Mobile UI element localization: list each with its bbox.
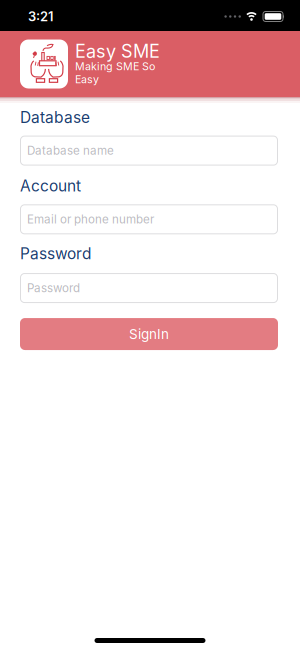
staticText: Making SME So Easy — [75, 60, 155, 86]
button[interactable]: Email or phone number — [20, 204, 278, 234]
staticText: Database name — [27, 144, 114, 158]
staticText: Account — [20, 177, 81, 195]
staticText: Database — [20, 108, 90, 127]
staticText: Password — [20, 244, 91, 263]
button[interactable]: SignIn — [20, 318, 278, 350]
staticText: Easy SME — [75, 40, 160, 62]
staticText: Password — [27, 281, 80, 295]
staticText: 3:21 — [28, 9, 53, 24]
staticText: Email or phone number — [27, 212, 154, 226]
staticText: SignIn — [129, 326, 169, 342]
button[interactable]: Database name — [20, 136, 278, 166]
button[interactable]: Password — [20, 273, 278, 303]
